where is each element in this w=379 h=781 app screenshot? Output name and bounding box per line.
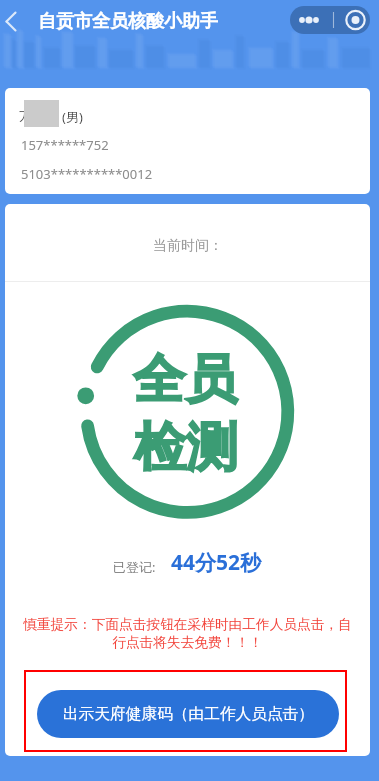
staticText: 自贡市全员核酸小助手 (38, 10, 218, 33)
staticText: 44分52秒 (171, 548, 262, 577)
staticText: (男) (62, 108, 83, 126)
staticText: 检测 (134, 415, 238, 481)
staticText: 全员 (133, 347, 237, 413)
staticText: 出示天府健康码（由工作人员点击） (63, 704, 314, 724)
staticText: 已登记: (113, 558, 156, 576)
staticText: 慎重提示：下面点击按钮在采样时由工作人员点击，自 (23, 616, 352, 633)
staticText: 方 (19, 107, 33, 125)
staticText: 5103**********0012 (21, 165, 153, 183)
button[interactable]: Back (0, 5, 26, 35)
staticText: 行点击将失去免费！！！ (112, 634, 263, 651)
button[interactable]: 出示天府健康码（由工作人员点击） (37, 690, 339, 738)
staticText: 当前时间： (153, 237, 223, 255)
staticText: 157******752 (21, 136, 109, 154)
button[interactable]: Menu (290, 6, 370, 34)
